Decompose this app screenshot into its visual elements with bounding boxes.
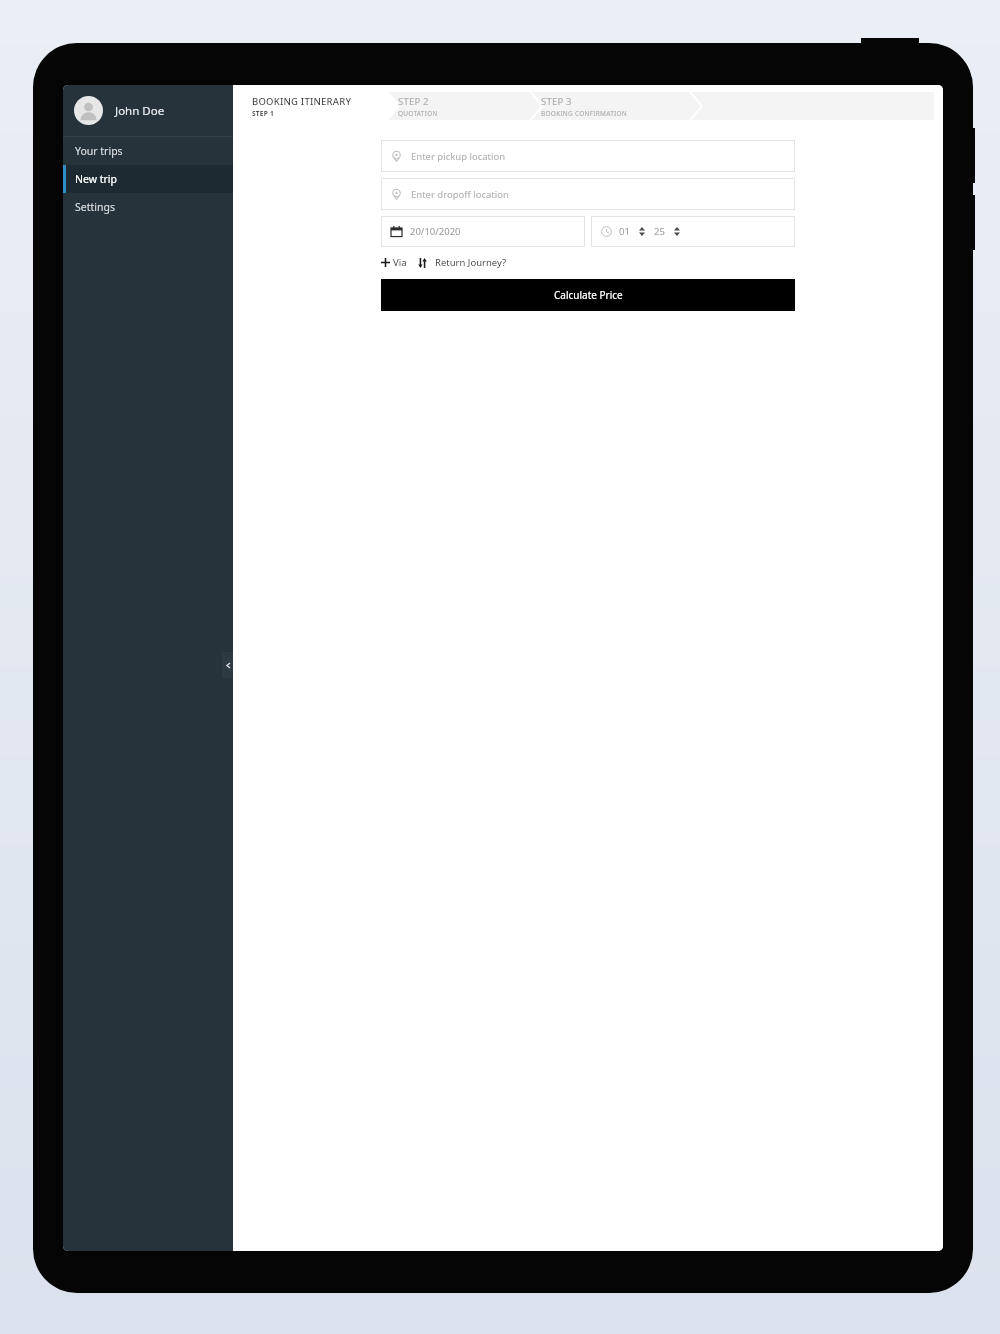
staticText: Enter dropoff location (411, 188, 509, 201)
staticText: John Doe (115, 103, 165, 119)
staticText: Calculate Price (554, 288, 623, 302)
button[interactable]: Enter pickup location (381, 140, 795, 172)
button[interactable]: STEP 3 (531, 92, 691, 120)
staticText: New trip (75, 172, 117, 186)
staticText: QUOTATION (398, 109, 438, 118)
button[interactable]: 01 (591, 216, 795, 247)
staticText: Your trips (75, 144, 123, 158)
button[interactable]: STEP 2 (388, 92, 531, 120)
staticText: Via (393, 256, 407, 269)
button[interactable]: 20/10/2020 (381, 216, 585, 247)
button[interactable]: Enter dropoff location (381, 178, 795, 210)
button[interactable]: Via (381, 254, 407, 271)
button[interactable]: Calculate Price (381, 279, 795, 311)
button[interactable]: BOOKING ITINERARY (242, 92, 388, 120)
staticText: 01 (619, 225, 630, 238)
staticText: STEP 2 (398, 95, 429, 108)
staticText: 25 (654, 225, 665, 238)
staticText: STEP 1 (252, 109, 274, 118)
staticText: 20/10/2020 (410, 225, 461, 238)
staticText: Enter pickup location (411, 150, 506, 163)
staticText: STEP 3 (541, 95, 572, 108)
button[interactable]: Your trips (63, 137, 233, 165)
staticText: Return Journey? (435, 256, 507, 269)
button[interactable]: Return Journey? (418, 254, 507, 271)
staticText: Settings (75, 200, 115, 214)
button[interactable]: Collapse sidebar (222, 652, 235, 678)
button[interactable]: John Doe (63, 85, 233, 136)
staticText: BOOKING ITINERARY (252, 95, 352, 108)
staticText: BOOKING CONFIRMATION (541, 109, 628, 118)
button[interactable]: New trip (63, 165, 233, 193)
button[interactable]: Settings (63, 193, 233, 221)
